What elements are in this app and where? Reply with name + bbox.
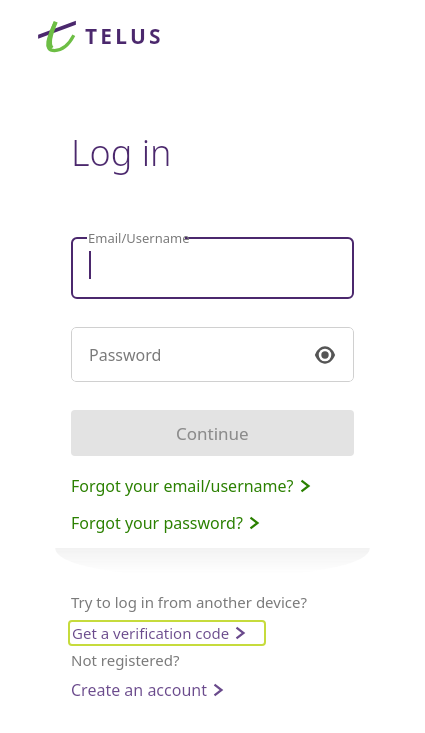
button[interactable]: Create an account xyxy=(71,678,223,702)
staticText: Email/Username xyxy=(88,229,190,247)
button[interactable] xyxy=(71,237,354,299)
button[interactable]: Continue xyxy=(71,410,354,456)
staticText: Forgot your email/username? xyxy=(71,475,294,497)
staticText: Create an account xyxy=(71,679,207,701)
button[interactable]: Show password xyxy=(310,340,340,370)
staticText: Get a verification code xyxy=(72,623,230,643)
button[interactable]: Password xyxy=(71,327,354,382)
staticText: TELUS xyxy=(85,22,164,51)
button[interactable]: Forgot your password? xyxy=(71,511,259,535)
button[interactable]: Get a verification code xyxy=(68,620,266,646)
staticText: Try to log in from another device? xyxy=(71,592,307,612)
staticText: Log in xyxy=(71,128,172,177)
other: TELUS xyxy=(36,18,181,54)
staticText: Not registered? xyxy=(71,650,180,670)
staticText: Continue xyxy=(176,422,249,445)
staticText: Password xyxy=(89,344,162,366)
button[interactable]: Forgot your email/username? xyxy=(71,474,310,498)
staticText: Forgot your password? xyxy=(71,512,243,534)
